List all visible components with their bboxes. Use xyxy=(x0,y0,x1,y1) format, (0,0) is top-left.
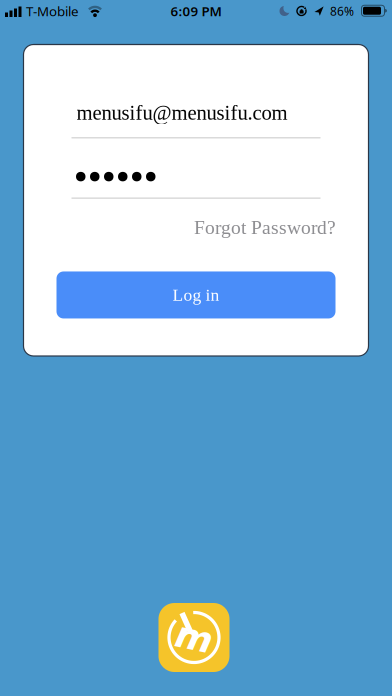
staticText: Log in xyxy=(172,285,219,305)
button[interactable]: Email xyxy=(23,101,368,138)
staticText: Forgot Password? xyxy=(194,217,336,238)
button[interactable]: Forgot Password? xyxy=(194,217,336,238)
staticText: menusifu@menusifu.com xyxy=(76,101,287,124)
button[interactable]: Log in xyxy=(56,271,335,318)
button[interactable]: Password xyxy=(23,172,368,199)
staticText: 86% xyxy=(330,3,354,19)
staticText: T-Mobile xyxy=(26,2,79,20)
staticText: 6:09 PM xyxy=(170,2,221,20)
staticText: m xyxy=(175,616,213,658)
